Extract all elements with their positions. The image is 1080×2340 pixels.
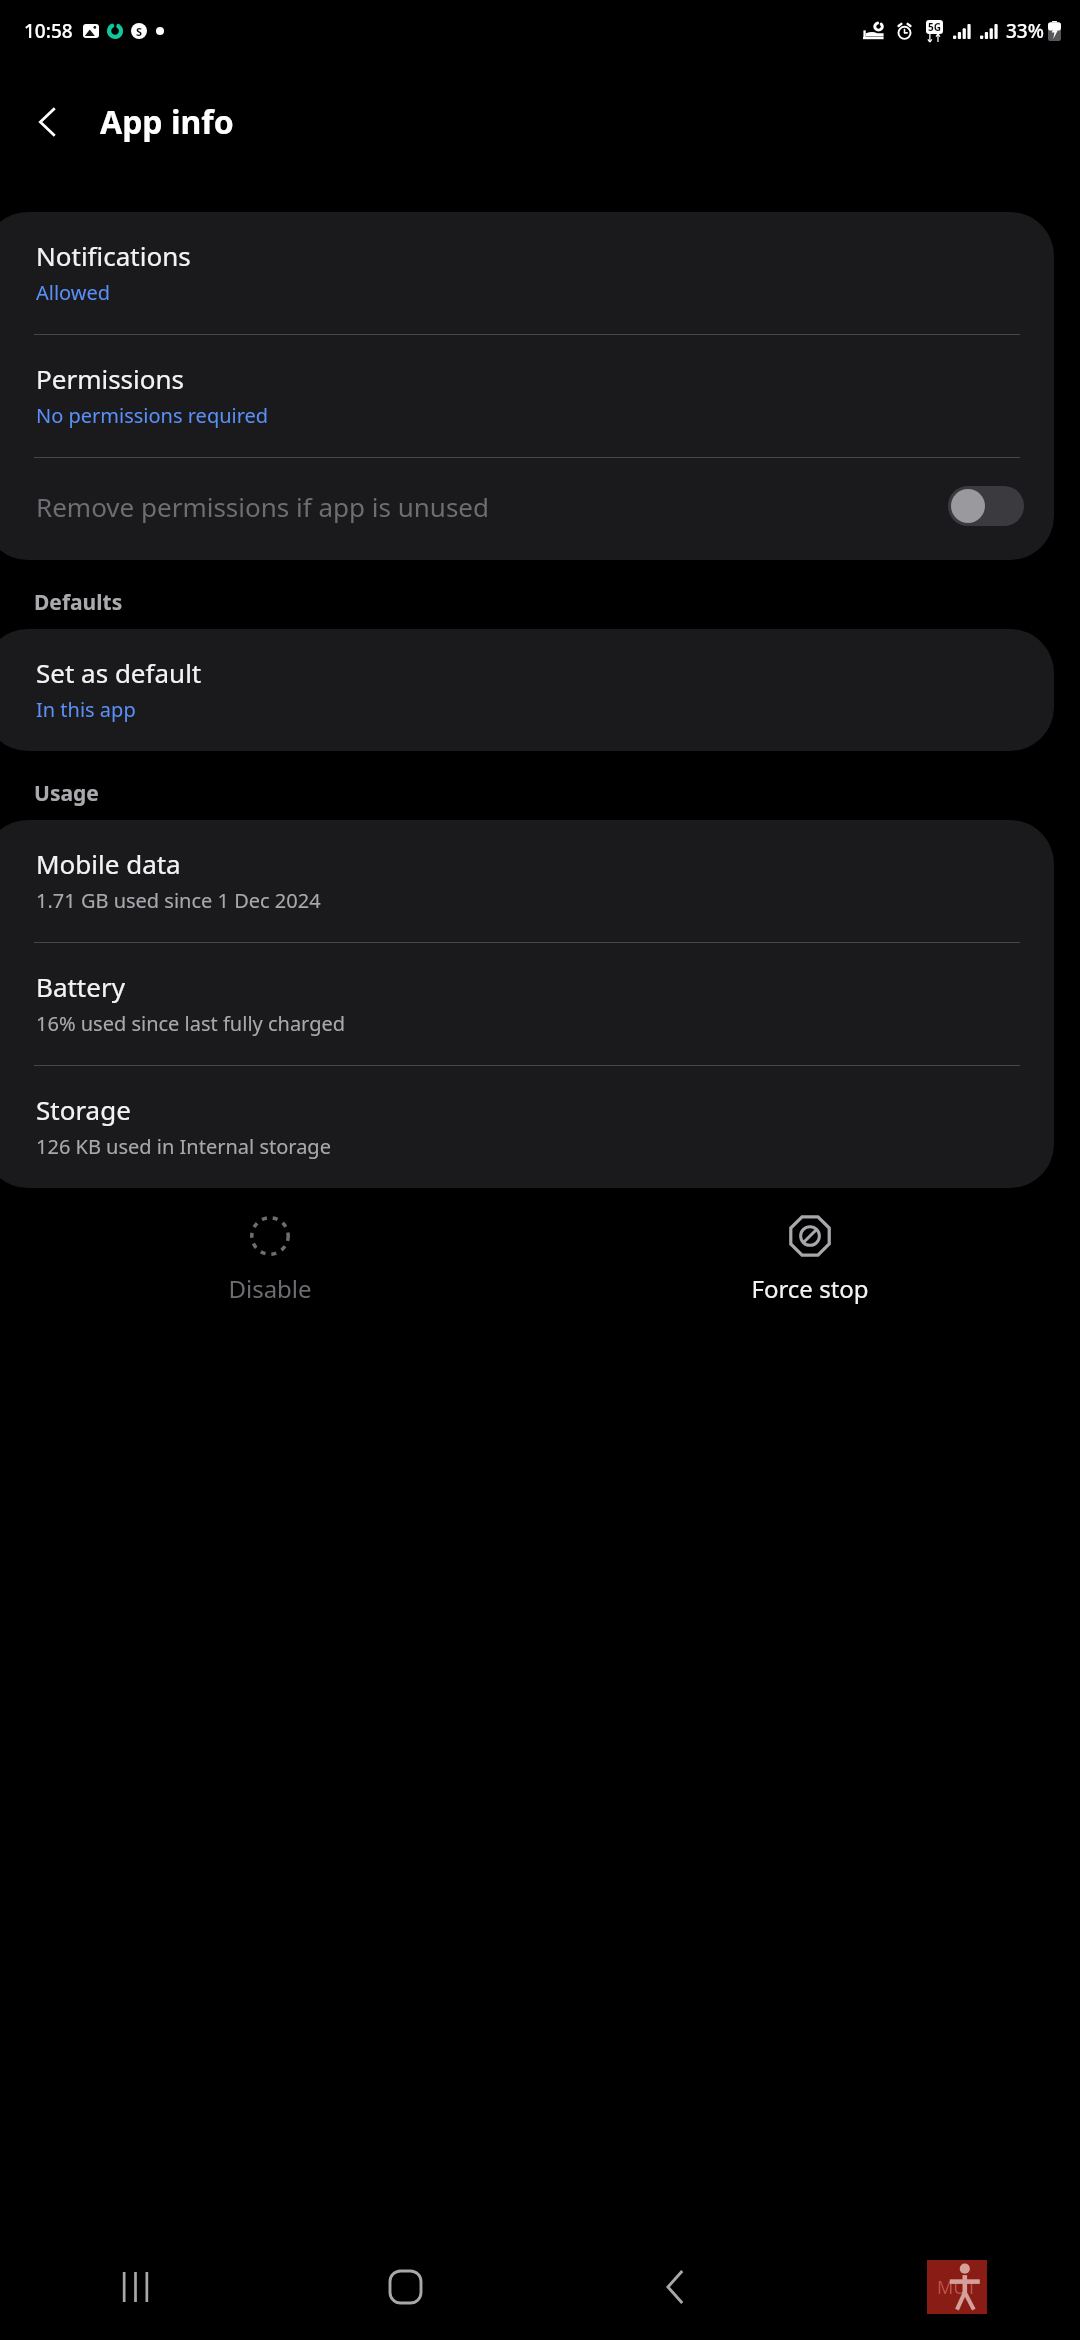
staticText: 1.71 GB used since 1 Dec 2024 <box>36 887 321 914</box>
staticText: S <box>136 24 143 39</box>
staticText: Usage <box>34 779 99 808</box>
staticText: No permissions required <box>36 402 269 429</box>
staticText: Permissions <box>36 361 185 396</box>
staticText: MUT <box>937 2275 977 2300</box>
button[interactable]: Back <box>540 2234 810 2340</box>
button[interactable]: Set as default <box>0 629 1054 751</box>
staticText: App info <box>100 100 234 144</box>
staticText: Defaults <box>34 588 123 617</box>
staticText: 10:58 <box>24 18 73 44</box>
staticText: Storage <box>36 1092 131 1127</box>
button[interactable]: Battery <box>0 943 1054 1065</box>
staticText: 5G <box>928 20 941 34</box>
button[interactable]: Mobile data <box>0 820 1054 942</box>
staticText: Disable <box>228 1272 312 1305</box>
button[interactable]: Storage <box>0 1066 1054 1188</box>
staticText: 126 KB used in Internal storage <box>36 1133 331 1160</box>
staticText: Remove permissions if app is unused <box>36 489 489 524</box>
staticText: Force stop <box>751 1272 869 1305</box>
staticText: In this app <box>36 696 136 723</box>
button[interactable]: Remove permissions if app is unused togg… <box>948 486 1024 526</box>
button[interactable]: Remove permissions if app is unused <box>0 458 1054 560</box>
staticText: Set as default <box>36 655 202 690</box>
staticText: Mobile data <box>36 846 181 881</box>
staticText: Battery <box>36 969 125 1004</box>
button[interactable]: Accessibility shortcut <box>810 2234 1080 2340</box>
staticText: 33% <box>1006 18 1044 44</box>
button[interactable]: Notifications <box>0 212 1054 334</box>
button[interactable]: Force stop <box>540 1198 1080 1317</box>
button[interactable]: Home <box>270 2234 540 2340</box>
staticText: Allowed <box>36 279 111 306</box>
staticText: Notifications <box>36 238 191 273</box>
button[interactable]: Permissions <box>0 335 1054 457</box>
staticText: 16% used since last fully charged <box>36 1010 346 1037</box>
button[interactable]: Disable <box>0 1198 540 1317</box>
button[interactable]: Back <box>20 94 76 150</box>
button[interactable]: Recents <box>0 2234 270 2340</box>
